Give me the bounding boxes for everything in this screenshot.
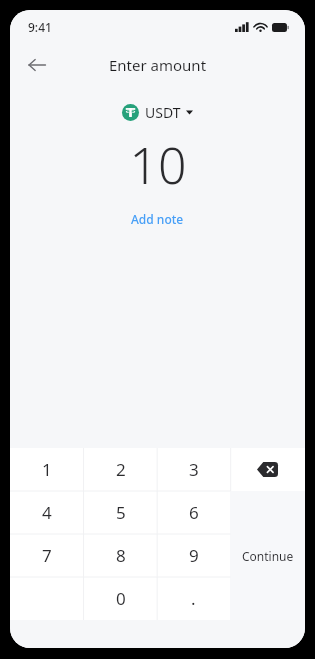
staticText: . (191, 587, 196, 610)
button[interactable]: USDT (116, 100, 199, 125)
button[interactable]: . (157, 577, 230, 620)
staticText: 8 (116, 544, 126, 567)
button[interactable]: 0 (84, 577, 157, 620)
staticText: Enter amount (109, 55, 207, 75)
staticText: 4 (42, 501, 52, 524)
button[interactable]: 7 (10, 534, 84, 577)
staticText: 6 (189, 501, 199, 524)
staticText: 10 (129, 131, 187, 199)
button[interactable]: 4 (10, 491, 84, 534)
staticText: 3 (189, 458, 199, 481)
button[interactable]: 6 (157, 491, 230, 534)
staticText: 1 (42, 458, 52, 481)
button[interactable]: Continue (230, 491, 305, 620)
staticText: Add note (131, 211, 184, 227)
staticText: 7 (42, 544, 52, 567)
button[interactable]: 8 (84, 534, 157, 577)
button[interactable]: 9 (157, 534, 230, 577)
staticText: 0 (116, 587, 126, 610)
button[interactable]: 2 (84, 448, 157, 491)
button[interactable]: 5 (84, 491, 157, 534)
button[interactable]: 3 (157, 448, 230, 491)
button[interactable]: 1 (10, 448, 84, 491)
staticText: 2 (116, 458, 126, 481)
button[interactable]: Back (20, 48, 54, 82)
staticText: 5 (116, 501, 126, 524)
staticText: USDT (145, 103, 181, 122)
button[interactable]: Backspace (230, 448, 305, 491)
staticText: Continue (242, 548, 294, 564)
staticText: 9 (189, 544, 199, 567)
staticText: 9:41 (28, 19, 52, 35)
button[interactable]: Add note (123, 207, 192, 231)
